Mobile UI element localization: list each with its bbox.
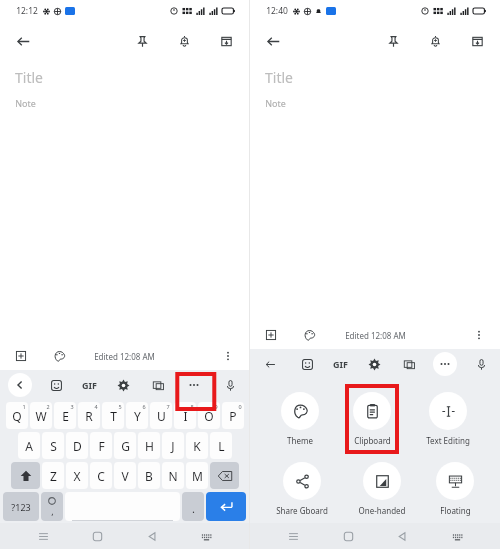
button[interactable]: N	[162, 462, 184, 489]
button[interactable]: Stickers	[296, 353, 318, 375]
button[interactable]: Back	[390, 524, 414, 548]
button[interactable]: Back	[258, 26, 288, 56]
button[interactable]: Settings	[112, 374, 134, 396]
button[interactable]: Reminder	[171, 28, 197, 54]
button[interactable]: Z	[42, 462, 64, 489]
button[interactable]: A	[18, 432, 40, 459]
button[interactable]: L	[210, 432, 232, 459]
button[interactable]: C	[90, 462, 112, 489]
staticText: U	[157, 408, 166, 424]
button[interactable]: Home	[85, 524, 109, 548]
button[interactable]: More	[182, 373, 206, 397]
button[interactable]: Add	[260, 324, 282, 346]
button[interactable]: Pin	[380, 28, 406, 54]
button[interactable]: Translate	[398, 353, 420, 375]
button[interactable]: Back	[258, 352, 282, 376]
staticText: X	[73, 468, 81, 484]
button[interactable]: Colour	[298, 324, 320, 346]
button[interactable]: Voice input	[470, 353, 492, 375]
staticText: N	[168, 468, 178, 484]
button[interactable]: Q	[6, 402, 28, 429]
button[interactable]: Floating	[432, 459, 478, 519]
button[interactable]: U	[150, 402, 172, 429]
staticText: 12:40	[266, 5, 288, 17]
button[interactable]: Translate	[147, 374, 169, 396]
button[interactable]: One-handed	[354, 459, 410, 519]
button[interactable]: ?123	[3, 492, 39, 521]
button[interactable]: Stickers	[45, 374, 67, 396]
button[interactable]: D	[66, 432, 88, 459]
button[interactable]: Theme	[277, 389, 323, 449]
button[interactable]: Back	[140, 524, 164, 548]
button[interactable]: Archive	[464, 28, 490, 54]
button[interactable]: Reminder	[422, 28, 448, 54]
button[interactable]: .	[182, 492, 204, 521]
button[interactable]: More options	[468, 324, 490, 346]
button[interactable]: O	[198, 402, 220, 429]
button[interactable]: Colour	[48, 345, 70, 367]
button[interactable]: Back	[8, 26, 38, 56]
button[interactable]: More options	[217, 345, 239, 367]
staticText: K	[193, 438, 201, 454]
button[interactable]: Enter	[206, 492, 246, 521]
button[interactable]: Clipboard	[349, 389, 395, 449]
button[interactable]: Archive	[213, 28, 239, 54]
staticText: Title	[15, 68, 43, 87]
staticText: G	[121, 438, 130, 454]
button[interactable]: Voice input	[219, 374, 241, 396]
button[interactable]: Shift	[11, 462, 40, 489]
button[interactable]: J	[162, 432, 184, 459]
button[interactable]: R	[78, 402, 100, 429]
button[interactable]: I	[174, 402, 196, 429]
button[interactable]: GIF	[331, 356, 350, 372]
staticText: .	[192, 501, 195, 516]
button[interactable]: F	[90, 432, 112, 459]
button[interactable]: Share Gboard	[272, 459, 332, 519]
staticText: B	[145, 468, 153, 484]
button[interactable]: Settings	[363, 353, 385, 375]
button[interactable]: S	[42, 432, 64, 459]
staticText: I	[183, 408, 188, 424]
button[interactable]: G	[114, 432, 136, 459]
staticText: GIF	[333, 358, 348, 370]
staticText: One-handed	[358, 505, 406, 516]
button[interactable]: K	[186, 432, 208, 459]
staticText: 4	[94, 403, 98, 410]
button[interactable]: More	[433, 352, 457, 376]
staticText: Q	[12, 408, 22, 424]
button[interactable]: Recents	[281, 524, 305, 548]
staticText: V	[121, 468, 129, 484]
button[interactable]: Add	[10, 345, 32, 367]
button[interactable]: W	[30, 402, 52, 429]
button[interactable]: X	[66, 462, 88, 489]
button[interactable]: B	[138, 462, 160, 489]
button[interactable]: Space	[65, 492, 180, 521]
staticText: 1	[22, 403, 26, 410]
button[interactable]: GIF	[80, 377, 99, 393]
button[interactable]: Backspace	[210, 462, 239, 489]
staticText: P	[229, 408, 237, 424]
staticText: Edited 12:08 AM	[94, 351, 155, 362]
staticText: S	[50, 438, 57, 454]
button[interactable]: Y	[126, 402, 148, 429]
button[interactable]: Text Editing	[422, 389, 474, 449]
button[interactable]: H	[138, 432, 160, 459]
button[interactable]: Pin	[129, 28, 155, 54]
button[interactable]: T	[102, 402, 124, 429]
staticText: H	[145, 438, 154, 454]
button[interactable]: M	[186, 462, 208, 489]
button[interactable]: Switch keyboard	[445, 524, 469, 548]
button[interactable]: P	[222, 402, 244, 429]
staticText: ?123	[11, 501, 31, 513]
button[interactable]: V	[114, 462, 136, 489]
staticText: L	[218, 438, 225, 454]
button[interactable]: E	[54, 402, 76, 429]
button[interactable]: Recents	[31, 524, 55, 548]
button[interactable]: Switch keyboard	[194, 524, 218, 548]
staticText: 2	[46, 403, 50, 410]
staticText: D	[73, 438, 82, 454]
staticText: 3	[70, 403, 74, 410]
button[interactable]: Back	[8, 373, 32, 397]
button[interactable]: Home	[336, 524, 360, 548]
button[interactable]: Emoji and comma	[41, 492, 63, 521]
